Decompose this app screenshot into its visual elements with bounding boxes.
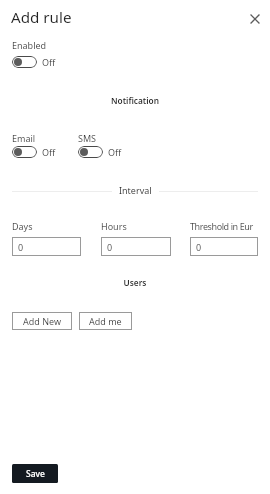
staticText: Interval — [119, 184, 152, 196]
button[interactable]: Email switch, Off — [12, 146, 56, 158]
staticText: SMS — [78, 132, 97, 144]
button[interactable]: Save — [12, 464, 58, 483]
staticText: 0 — [107, 241, 113, 253]
button[interactable]: 0 — [101, 237, 171, 256]
staticText: Days — [12, 220, 33, 232]
staticText: 0 — [196, 241, 202, 253]
staticText: Add New — [23, 315, 61, 327]
staticText: Off — [42, 56, 56, 68]
staticText: Users — [0, 277, 270, 288]
button[interactable]: Add me — [79, 312, 132, 330]
button[interactable]: Close — [244, 8, 266, 30]
button[interactable]: SMS switch, Off — [78, 146, 122, 158]
staticText: Threshold in Eur — [190, 220, 253, 232]
staticText: Hours — [101, 220, 127, 232]
staticText: Add rule — [11, 7, 72, 28]
staticText: Off — [108, 146, 122, 158]
staticText: Save — [26, 468, 45, 480]
staticText: Enabled — [12, 39, 47, 51]
staticText: 0 — [18, 241, 24, 253]
button[interactable]: Add New — [12, 312, 72, 330]
staticText: Email — [12, 132, 36, 144]
staticText: Notification — [0, 95, 270, 106]
button[interactable]: Enabled switch, Off — [12, 56, 56, 68]
staticText: Off — [42, 146, 56, 158]
button[interactable]: 0 — [190, 237, 258, 256]
button[interactable]: 0 — [12, 237, 81, 256]
staticText: Add me — [89, 315, 122, 327]
